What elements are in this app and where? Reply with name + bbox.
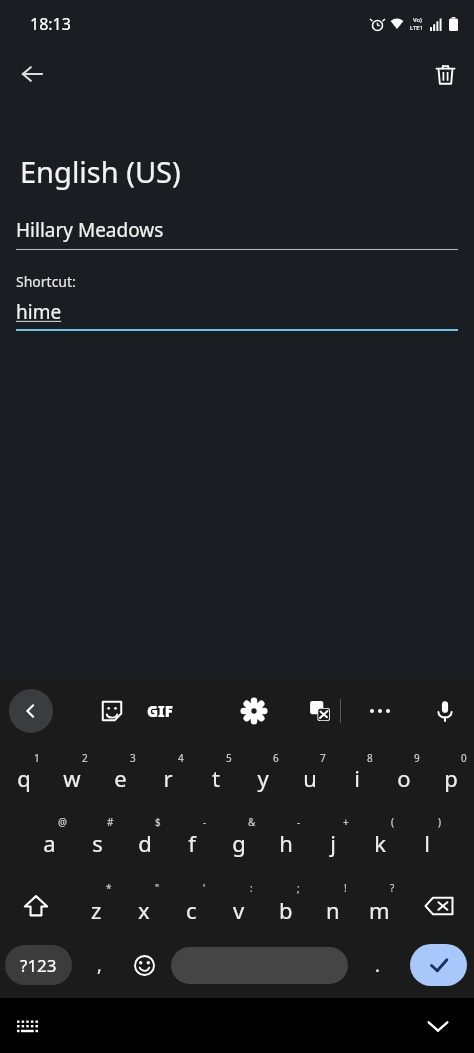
staticText: & — [248, 815, 256, 829]
staticText: e — [114, 763, 127, 793]
button[interactable]: q — [0, 742, 48, 806]
staticText: a — [43, 828, 56, 858]
staticText: Shortcut: — [16, 272, 76, 291]
button[interactable]: n — [309, 872, 356, 940]
staticText: j — [330, 828, 336, 858]
button[interactable]: w — [48, 742, 96, 806]
staticText: hime — [16, 299, 62, 325]
staticText: $ — [155, 815, 161, 829]
staticText: # — [107, 815, 114, 829]
staticText: t — [212, 763, 220, 793]
button[interactable]: Shift — [0, 872, 72, 940]
button[interactable]: Enter — [410, 944, 467, 986]
staticText: " — [155, 881, 160, 895]
button[interactable]: Backspace — [403, 872, 474, 940]
staticText: g — [232, 828, 246, 858]
staticText: English (US) — [20, 152, 181, 191]
button[interactable]: Back — [9, 689, 53, 733]
button[interactable]: i — [333, 742, 380, 806]
button[interactable]: r — [144, 742, 192, 806]
staticText: 3 — [130, 751, 136, 765]
staticText: * — [106, 881, 112, 895]
button[interactable]: f — [168, 806, 215, 872]
button[interactable]: k — [356, 806, 403, 872]
staticText: r — [163, 763, 173, 793]
button[interactable]: b — [262, 872, 309, 940]
staticText: s — [92, 828, 103, 858]
button[interactable]: y — [239, 742, 286, 806]
staticText: 18:13 — [30, 13, 71, 35]
staticText: w — [63, 763, 81, 793]
staticText: ' — [203, 881, 206, 895]
staticText: 4 — [178, 751, 184, 765]
staticText: - — [203, 815, 207, 829]
staticText: ?123 — [20, 954, 57, 977]
button[interactable]: Delete — [423, 52, 467, 96]
button[interactable]: g — [215, 806, 262, 872]
button[interactable]: t — [192, 742, 239, 806]
button[interactable]: More options — [358, 689, 402, 733]
staticText: d — [138, 828, 152, 858]
button[interactable]: , — [82, 948, 116, 982]
button[interactable]: p — [427, 742, 474, 806]
staticText: f — [188, 828, 196, 858]
button[interactable]: o — [380, 742, 427, 806]
staticText: @ — [58, 815, 67, 829]
staticText: k — [374, 828, 386, 858]
staticText: m — [369, 895, 390, 925]
staticText: : — [250, 881, 253, 895]
staticText: 8 — [367, 751, 373, 765]
button[interactable]: j — [309, 806, 356, 872]
staticText: ! — [344, 881, 347, 895]
staticText: b — [279, 895, 293, 925]
staticText: - — [297, 815, 301, 829]
staticText: i — [354, 763, 360, 793]
button[interactable]: . — [360, 948, 394, 982]
button[interactable]: Back — [10, 52, 54, 96]
button[interactable]: Stickers — [90, 680, 134, 742]
button[interactable]: e — [96, 742, 144, 806]
staticText: q — [17, 763, 31, 793]
button[interactable]: Settings — [232, 680, 276, 742]
staticText: y — [257, 763, 269, 793]
button[interactable]: h — [262, 806, 309, 872]
staticText: ( — [391, 815, 394, 829]
button[interactable]: Change keyboard — [8, 1006, 48, 1046]
button[interactable]: a — [25, 806, 73, 872]
button[interactable]: c — [168, 872, 215, 940]
button[interactable]: GIF — [138, 689, 182, 733]
staticText: 7 — [320, 751, 326, 765]
staticText: 1 — [34, 751, 40, 765]
button[interactable]: Voice input — [423, 689, 467, 733]
button[interactable]: x — [120, 872, 168, 940]
staticText: ) — [438, 815, 441, 829]
button[interactable]: z — [72, 872, 120, 940]
staticText: n — [326, 895, 340, 925]
staticText: 0 — [461, 751, 467, 765]
staticText: 6 — [273, 751, 279, 765]
button[interactable]: u — [286, 742, 333, 806]
staticText: h — [279, 828, 293, 858]
button[interactable]: v — [215, 872, 262, 940]
button[interactable]: Translate — [298, 680, 342, 742]
staticText: , — [97, 953, 102, 978]
staticText: c — [186, 895, 197, 925]
staticText: LTE1 — [410, 24, 424, 32]
staticText: l — [424, 828, 430, 858]
button[interactable]: s — [73, 806, 121, 872]
button[interactable]: ?123 — [5, 945, 72, 985]
button[interactable]: l — [403, 806, 450, 872]
button[interactable]: d — [121, 806, 168, 872]
button[interactable]: Hide keyboard — [416, 1004, 460, 1048]
staticText: v — [233, 895, 245, 925]
staticText: 5 — [226, 751, 232, 765]
staticText: ? — [390, 881, 395, 895]
button[interactable]: Space — [171, 947, 348, 984]
staticText: + — [343, 815, 349, 829]
staticText: u — [303, 763, 317, 793]
button[interactable]: m — [356, 872, 403, 940]
button[interactable]: Emoji — [124, 945, 164, 985]
staticText: x — [138, 895, 150, 925]
staticText: z — [91, 895, 102, 925]
staticText: GIF — [147, 701, 173, 721]
